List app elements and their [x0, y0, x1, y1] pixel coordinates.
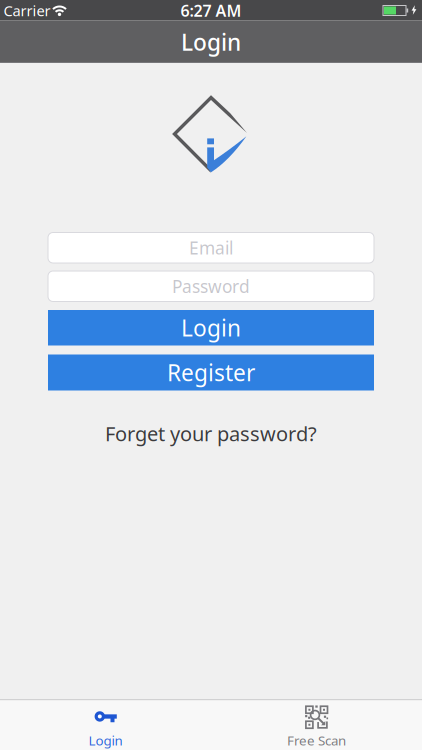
- staticText: Register: [167, 357, 255, 387]
- button[interactable]: Forget your password?: [86, 421, 336, 445]
- button[interactable]: Login: [48, 310, 374, 345]
- staticText: Carrier: [3, 1, 50, 20]
- button[interactable]: Register: [48, 354, 374, 390]
- staticText: Forget your password?: [105, 420, 317, 447]
- staticText: Email: [189, 236, 233, 259]
- button[interactable]: Free Scan: [211, 702, 421, 750]
- staticText: Login: [88, 731, 122, 749]
- button[interactable]: Password: [48, 271, 374, 301]
- button[interactable]: Email: [48, 232, 374, 263]
- staticText: Login: [181, 313, 241, 343]
- staticText: Free Scan: [287, 731, 346, 749]
- staticText: 6:27 AM: [180, 0, 241, 21]
- button[interactable]: Login: [0, 702, 210, 750]
- staticText: Login: [181, 27, 241, 57]
- staticText: Password: [172, 275, 250, 298]
